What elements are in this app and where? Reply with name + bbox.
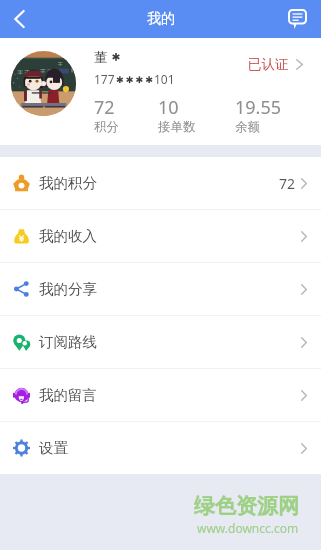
staticText: 绿色资源网 xyxy=(194,493,299,519)
staticText: 我的留言 xyxy=(39,386,97,404)
button[interactable]: 我的留言 xyxy=(0,369,321,421)
staticText: www.downcc.com xyxy=(197,520,299,536)
button[interactable]: 订阅路线 xyxy=(0,316,321,368)
staticText: 72 xyxy=(94,95,115,120)
staticText: 我的收入 xyxy=(39,227,97,245)
button[interactable]: 我的积分 xyxy=(0,157,321,209)
staticText: 积分 xyxy=(94,119,119,135)
button[interactable]: Profile photo xyxy=(11,51,76,116)
staticText: 我的分享 xyxy=(39,280,97,298)
button[interactable]: 已认证 xyxy=(248,56,303,73)
button[interactable]: 设置 xyxy=(0,422,321,474)
staticText: 设置 xyxy=(39,439,68,457)
staticText: 72 xyxy=(279,174,296,193)
button[interactable]: 我的收入 xyxy=(0,210,321,262)
staticText: 177 xyxy=(94,71,115,87)
staticText: 19.55 xyxy=(235,95,282,120)
staticText: 订阅路线 xyxy=(39,333,97,351)
button[interactable]: Messages xyxy=(282,4,312,34)
staticText: 我的 xyxy=(147,10,175,28)
staticText: 董 xyxy=(94,49,108,66)
staticText: 我的积分 xyxy=(39,174,97,192)
staticText: 余额 xyxy=(235,119,260,135)
staticText: 已认证 xyxy=(248,56,289,73)
staticText: 10 xyxy=(158,95,179,120)
button[interactable]: Back xyxy=(0,0,38,38)
staticText: 101 xyxy=(154,71,175,87)
staticText: 接单数 xyxy=(158,119,196,135)
button[interactable]: 我的分享 xyxy=(0,263,321,315)
